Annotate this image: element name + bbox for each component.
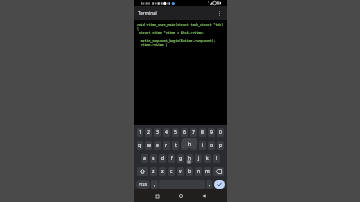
button[interactable]: l bbox=[213, 154, 220, 163]
staticText: write_seqcount_begin(&vtime->seqcount); bbox=[137, 39, 216, 43]
button[interactable]: ?123 bbox=[136, 180, 150, 189]
staticText: 2 bbox=[147, 129, 150, 136]
button[interactable]: 1 bbox=[137, 128, 143, 137]
button[interactable]: j bbox=[195, 154, 202, 163]
staticText: struct vtime *vtime = &tsk->vtime; bbox=[137, 31, 204, 35]
staticText: 1 bbox=[139, 129, 142, 136]
staticText: w bbox=[147, 142, 151, 149]
button[interactable]: k bbox=[204, 154, 211, 163]
staticText: ?123 bbox=[139, 182, 147, 187]
button[interactable]: 7 bbox=[190, 128, 197, 137]
staticText: c bbox=[170, 168, 173, 175]
staticText: x bbox=[161, 168, 164, 175]
button[interactable]: Backspace bbox=[213, 167, 224, 176]
button[interactable]: 2 bbox=[145, 128, 152, 137]
button[interactable]: 8 bbox=[199, 128, 206, 137]
staticText: vtime->vtime | bbox=[137, 43, 168, 47]
button[interactable]: Period bbox=[206, 180, 212, 189]
button[interactable]: w bbox=[145, 141, 152, 150]
button[interactable]: Back bbox=[199, 191, 209, 201]
other: Shift bbox=[140, 169, 145, 174]
button[interactable]: More options bbox=[214, 8, 225, 19]
button[interactable]: z bbox=[150, 167, 157, 176]
staticText: z bbox=[152, 168, 155, 175]
staticText: 7 bbox=[192, 129, 195, 136]
button[interactable]: i bbox=[199, 141, 206, 150]
button[interactable]: y bbox=[181, 141, 188, 150]
button[interactable]: q bbox=[137, 141, 143, 150]
staticText: i bbox=[202, 142, 204, 149]
button[interactable]: r bbox=[163, 141, 170, 150]
button[interactable]: x bbox=[159, 167, 166, 176]
staticText: h bbox=[188, 155, 192, 162]
button[interactable]: b bbox=[186, 167, 193, 176]
staticText: e bbox=[156, 142, 159, 149]
staticText: b bbox=[188, 168, 192, 175]
button[interactable]: 5 bbox=[172, 128, 179, 137]
staticText: m bbox=[205, 168, 210, 175]
staticText: y bbox=[183, 142, 186, 149]
button[interactable]: d bbox=[159, 154, 166, 163]
button[interactable]: o bbox=[208, 141, 215, 150]
button[interactable]: h bbox=[186, 154, 193, 163]
button[interactable]: t bbox=[172, 141, 179, 150]
button[interactable]: 6 bbox=[181, 128, 188, 137]
button[interactable]: m bbox=[204, 167, 211, 176]
button[interactable]: u bbox=[190, 141, 197, 150]
staticText: 4 bbox=[165, 129, 168, 136]
staticText: void vtime_user_main(struct task_struct … bbox=[137, 23, 224, 27]
staticText: Terminal bbox=[138, 10, 157, 16]
staticText: o bbox=[210, 142, 214, 149]
staticText: j bbox=[198, 155, 200, 162]
button[interactable]: 4 bbox=[163, 128, 170, 137]
button[interactable]: Shift bbox=[137, 167, 148, 176]
button[interactable]: v bbox=[177, 167, 184, 176]
button[interactable]: Comma bbox=[151, 180, 158, 189]
staticText: l bbox=[216, 155, 218, 162]
staticText: g bbox=[179, 155, 183, 162]
staticText: d bbox=[161, 155, 165, 162]
button[interactable]: Home bbox=[176, 191, 186, 201]
button[interactable]: e bbox=[154, 141, 161, 150]
button[interactable]: c bbox=[168, 167, 175, 176]
staticText: v bbox=[179, 168, 182, 175]
staticText: 0 bbox=[219, 129, 222, 136]
button[interactable]: 9 bbox=[208, 128, 215, 137]
button[interactable]: s bbox=[150, 154, 157, 163]
button[interactable]: Enter bbox=[214, 180, 225, 189]
staticText: { bbox=[137, 27, 139, 31]
button[interactable]: n bbox=[195, 167, 202, 176]
button[interactable]: f bbox=[168, 154, 175, 163]
staticText: q bbox=[138, 142, 142, 149]
staticText: u bbox=[192, 142, 196, 149]
staticText: 6 bbox=[183, 129, 186, 136]
staticText: k bbox=[206, 155, 209, 162]
staticText: a bbox=[143, 155, 146, 162]
button[interactable]: 3 bbox=[154, 128, 161, 137]
staticText: 9 bbox=[210, 129, 213, 136]
button[interactable]: p bbox=[217, 141, 224, 150]
staticText: f bbox=[171, 155, 173, 162]
staticText: r bbox=[165, 142, 168, 149]
staticText: n bbox=[197, 168, 201, 175]
staticText: t bbox=[175, 142, 177, 149]
staticText: 5 bbox=[174, 129, 177, 136]
button[interactable]: 0 bbox=[217, 128, 224, 137]
staticText: s bbox=[152, 155, 155, 162]
staticText: h bbox=[188, 140, 192, 147]
staticText: 3 bbox=[156, 129, 159, 136]
button[interactable]: Recent apps bbox=[152, 191, 162, 201]
button[interactable]: g bbox=[177, 154, 184, 163]
staticText: p bbox=[219, 142, 223, 149]
staticText: 8 bbox=[201, 129, 204, 136]
button[interactable]: a bbox=[141, 154, 148, 163]
other: Backspace bbox=[216, 169, 222, 174]
